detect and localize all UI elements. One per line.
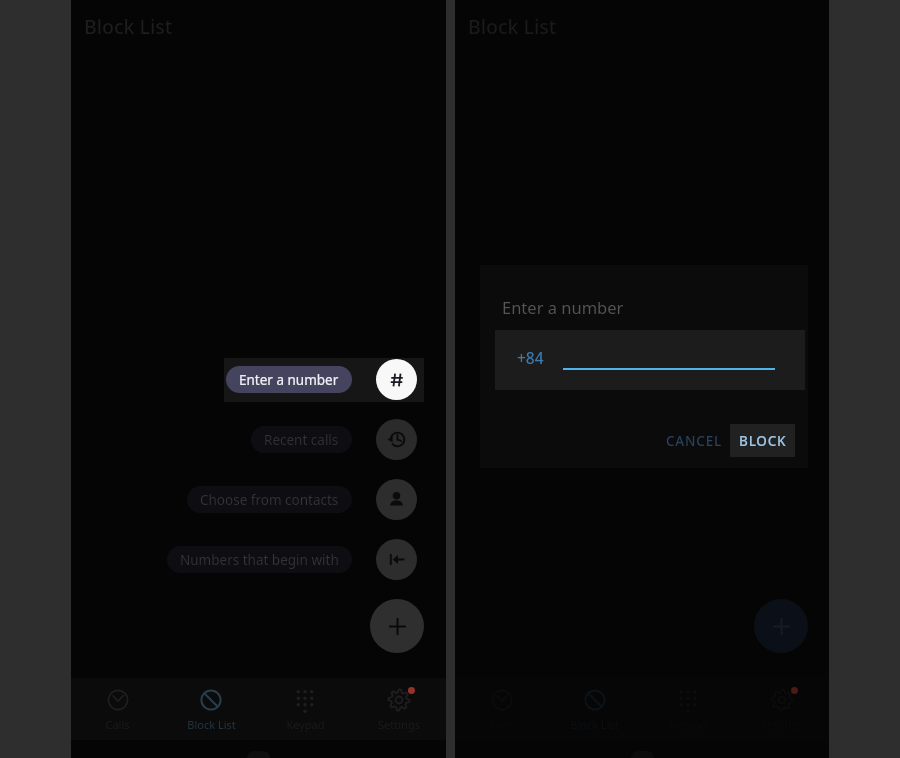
staticText: Block List [187,717,236,732]
button[interactable]: Recent calls [376,419,417,460]
button[interactable]: BLOCK [730,424,795,457]
staticText: Keypad [286,717,325,732]
staticText: Block List [468,13,557,40]
button[interactable]: Choose from contacts [376,479,417,520]
button[interactable]: Numbers that begin with [167,546,352,573]
button[interactable]: Block List [164,678,258,740]
staticText: Enter a number [502,296,624,318]
staticText: Numbers that begin with [180,551,339,569]
button[interactable]: Enter a number [226,366,352,393]
button[interactable]: Recent calls [251,426,352,453]
staticText: Calls [105,717,130,732]
button[interactable]: Enter a number [376,359,417,400]
staticText: Enter a number [239,371,339,389]
staticText: Choose from contacts [200,491,339,509]
staticText: Block List [84,13,173,40]
staticText: Recent calls [264,431,339,449]
button[interactable]: Settings [735,678,829,740]
staticText: CANCEL [666,432,722,450]
button[interactable]: Settings [352,678,446,740]
staticText: Block List [570,717,619,732]
staticText: BLOCK [739,432,787,450]
button[interactable]: Add [754,599,808,653]
button[interactable]: Choose from contacts [187,486,352,513]
button[interactable]: Add [370,599,424,653]
button[interactable]: Numbers that begin with [376,539,417,580]
staticText: Settings [378,717,420,732]
staticText: +84 [517,347,544,368]
button[interactable]: CANCEL [656,424,732,457]
